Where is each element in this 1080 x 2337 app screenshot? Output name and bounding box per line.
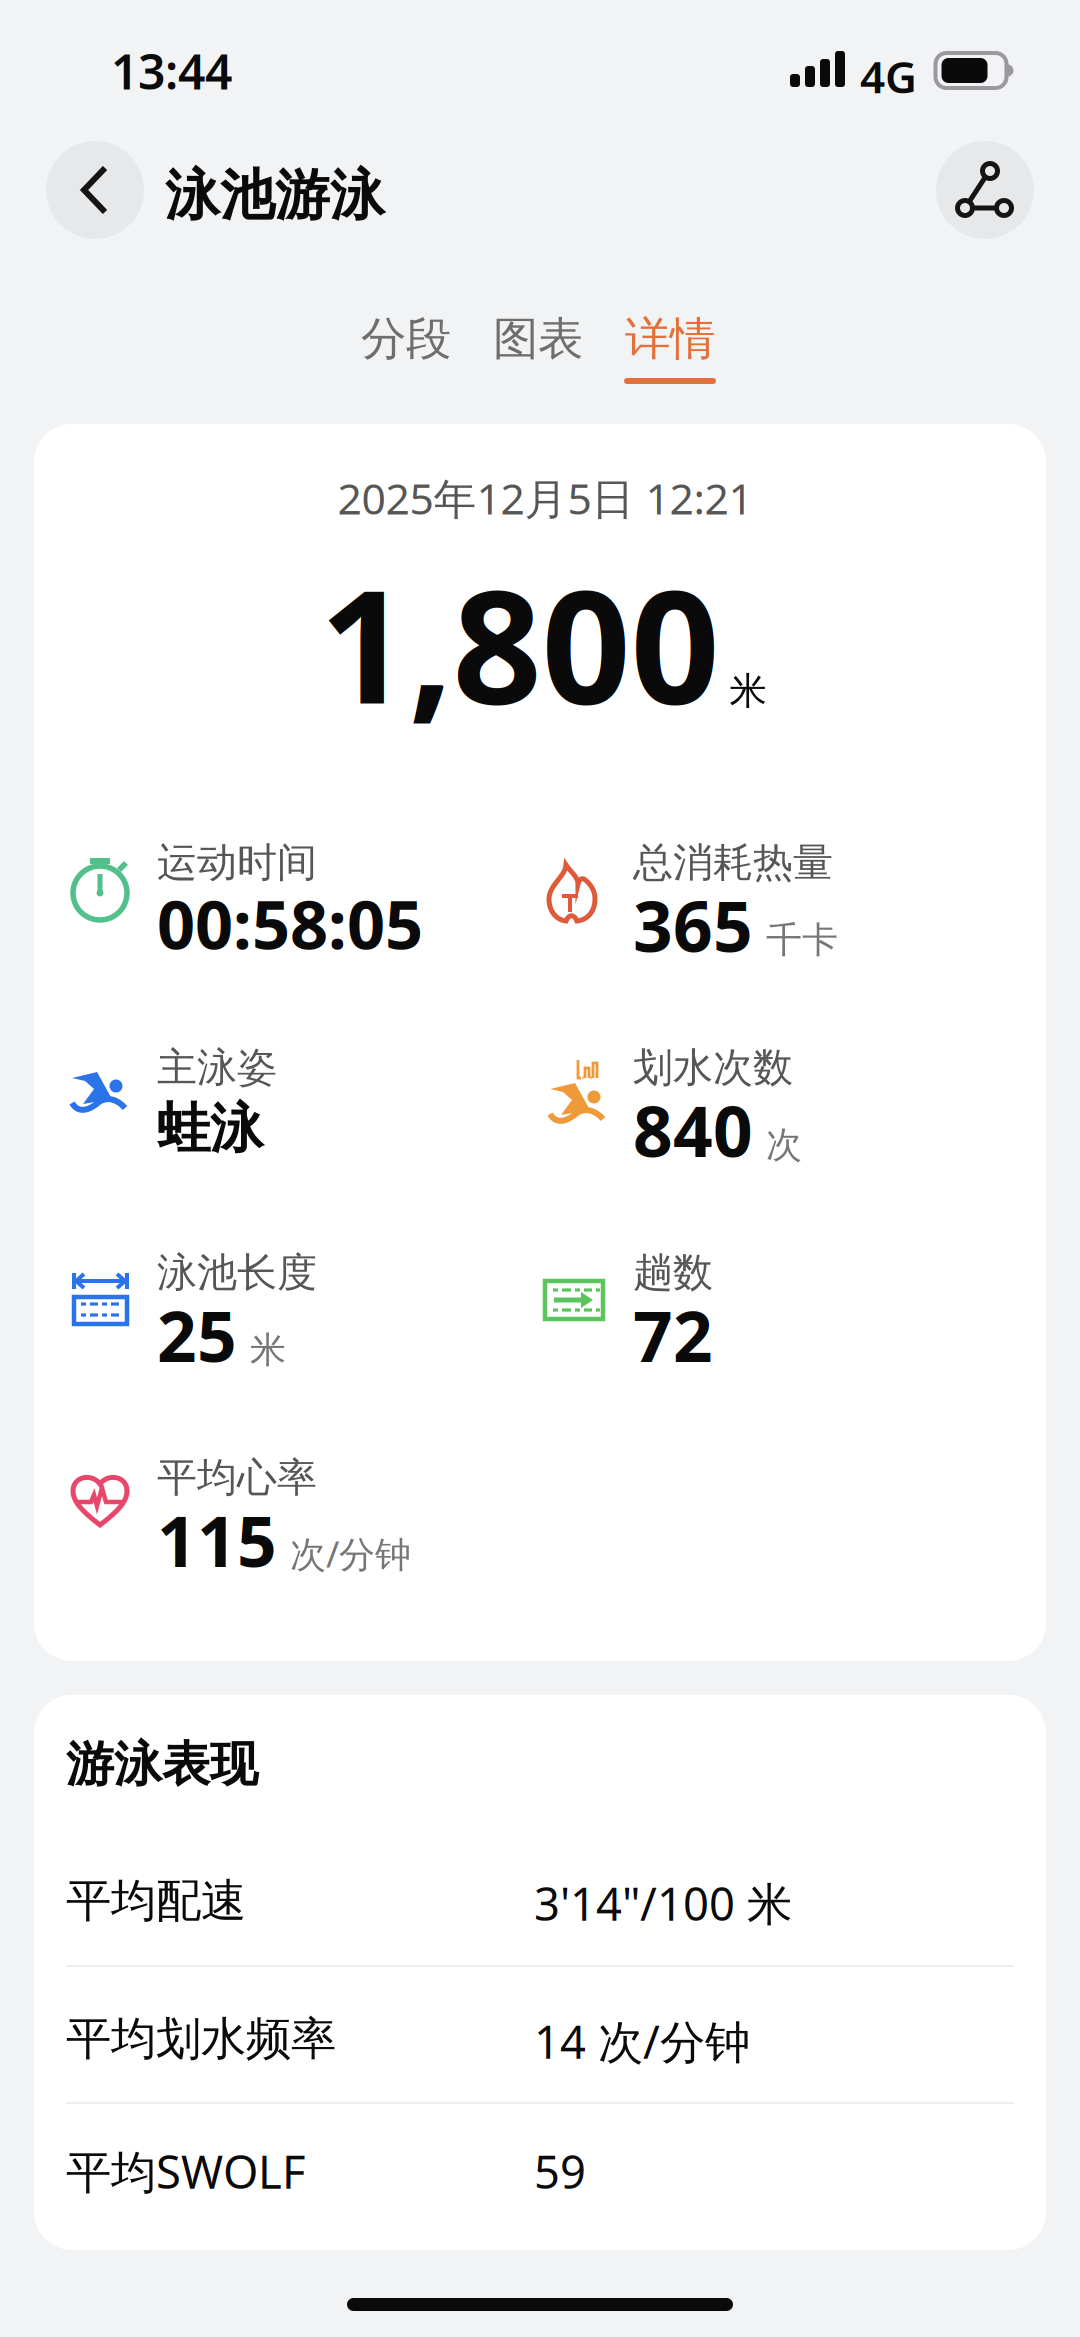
staticText: 米: [729, 668, 766, 714]
staticText: 3'14"/100 米: [534, 1873, 792, 1933]
staticText: 2025年12月5日 12:21: [337, 470, 752, 526]
staticText: 蛙泳: [157, 1096, 263, 1161]
staticText: 72: [633, 1289, 713, 1381]
staticText: 次: [766, 1123, 802, 1167]
staticText: 总消耗热量: [633, 838, 833, 887]
staticText: 主泳姿: [157, 1043, 277, 1092]
staticText: 00:58:05: [157, 879, 423, 967]
staticText: 13:44: [111, 39, 232, 103]
staticText: 次/分钟: [290, 1530, 411, 1577]
button[interactable]: 详情: [622, 300, 718, 400]
button[interactable]: Share: [936, 141, 1034, 239]
staticText: 4G: [860, 47, 917, 105]
staticText: 25: [157, 1289, 237, 1381]
staticText: 平均划水频率: [66, 2011, 336, 2067]
staticText: 115: [157, 1494, 277, 1586]
staticText: 平均SWOLF: [66, 2141, 306, 2201]
staticText: 840: [633, 1084, 753, 1176]
staticText: 365: [633, 879, 753, 971]
staticText: 分段: [361, 311, 451, 367]
staticText: 游泳表现: [66, 1735, 258, 1794]
staticText: 14 次/分钟: [534, 2011, 750, 2071]
staticText: 平均配速: [66, 1873, 246, 1929]
staticText: 划水次数: [633, 1043, 793, 1092]
staticText: 1,800: [319, 539, 719, 747]
staticText: 图表: [493, 311, 583, 367]
button[interactable]: 图表: [490, 300, 586, 378]
staticText: 千卡: [766, 918, 838, 962]
staticText: 详情: [625, 311, 715, 367]
button[interactable]: Back: [46, 141, 144, 239]
staticText: 趟数: [633, 1248, 713, 1297]
staticText: 米: [250, 1328, 286, 1372]
staticText: 泳池游泳: [165, 162, 385, 229]
staticText: 59: [534, 2141, 586, 2201]
button[interactable]: 分段: [358, 300, 454, 378]
staticText: 运动时间: [157, 838, 317, 887]
staticText: 泳池长度: [157, 1248, 317, 1297]
staticText: 平均心率: [157, 1453, 317, 1502]
